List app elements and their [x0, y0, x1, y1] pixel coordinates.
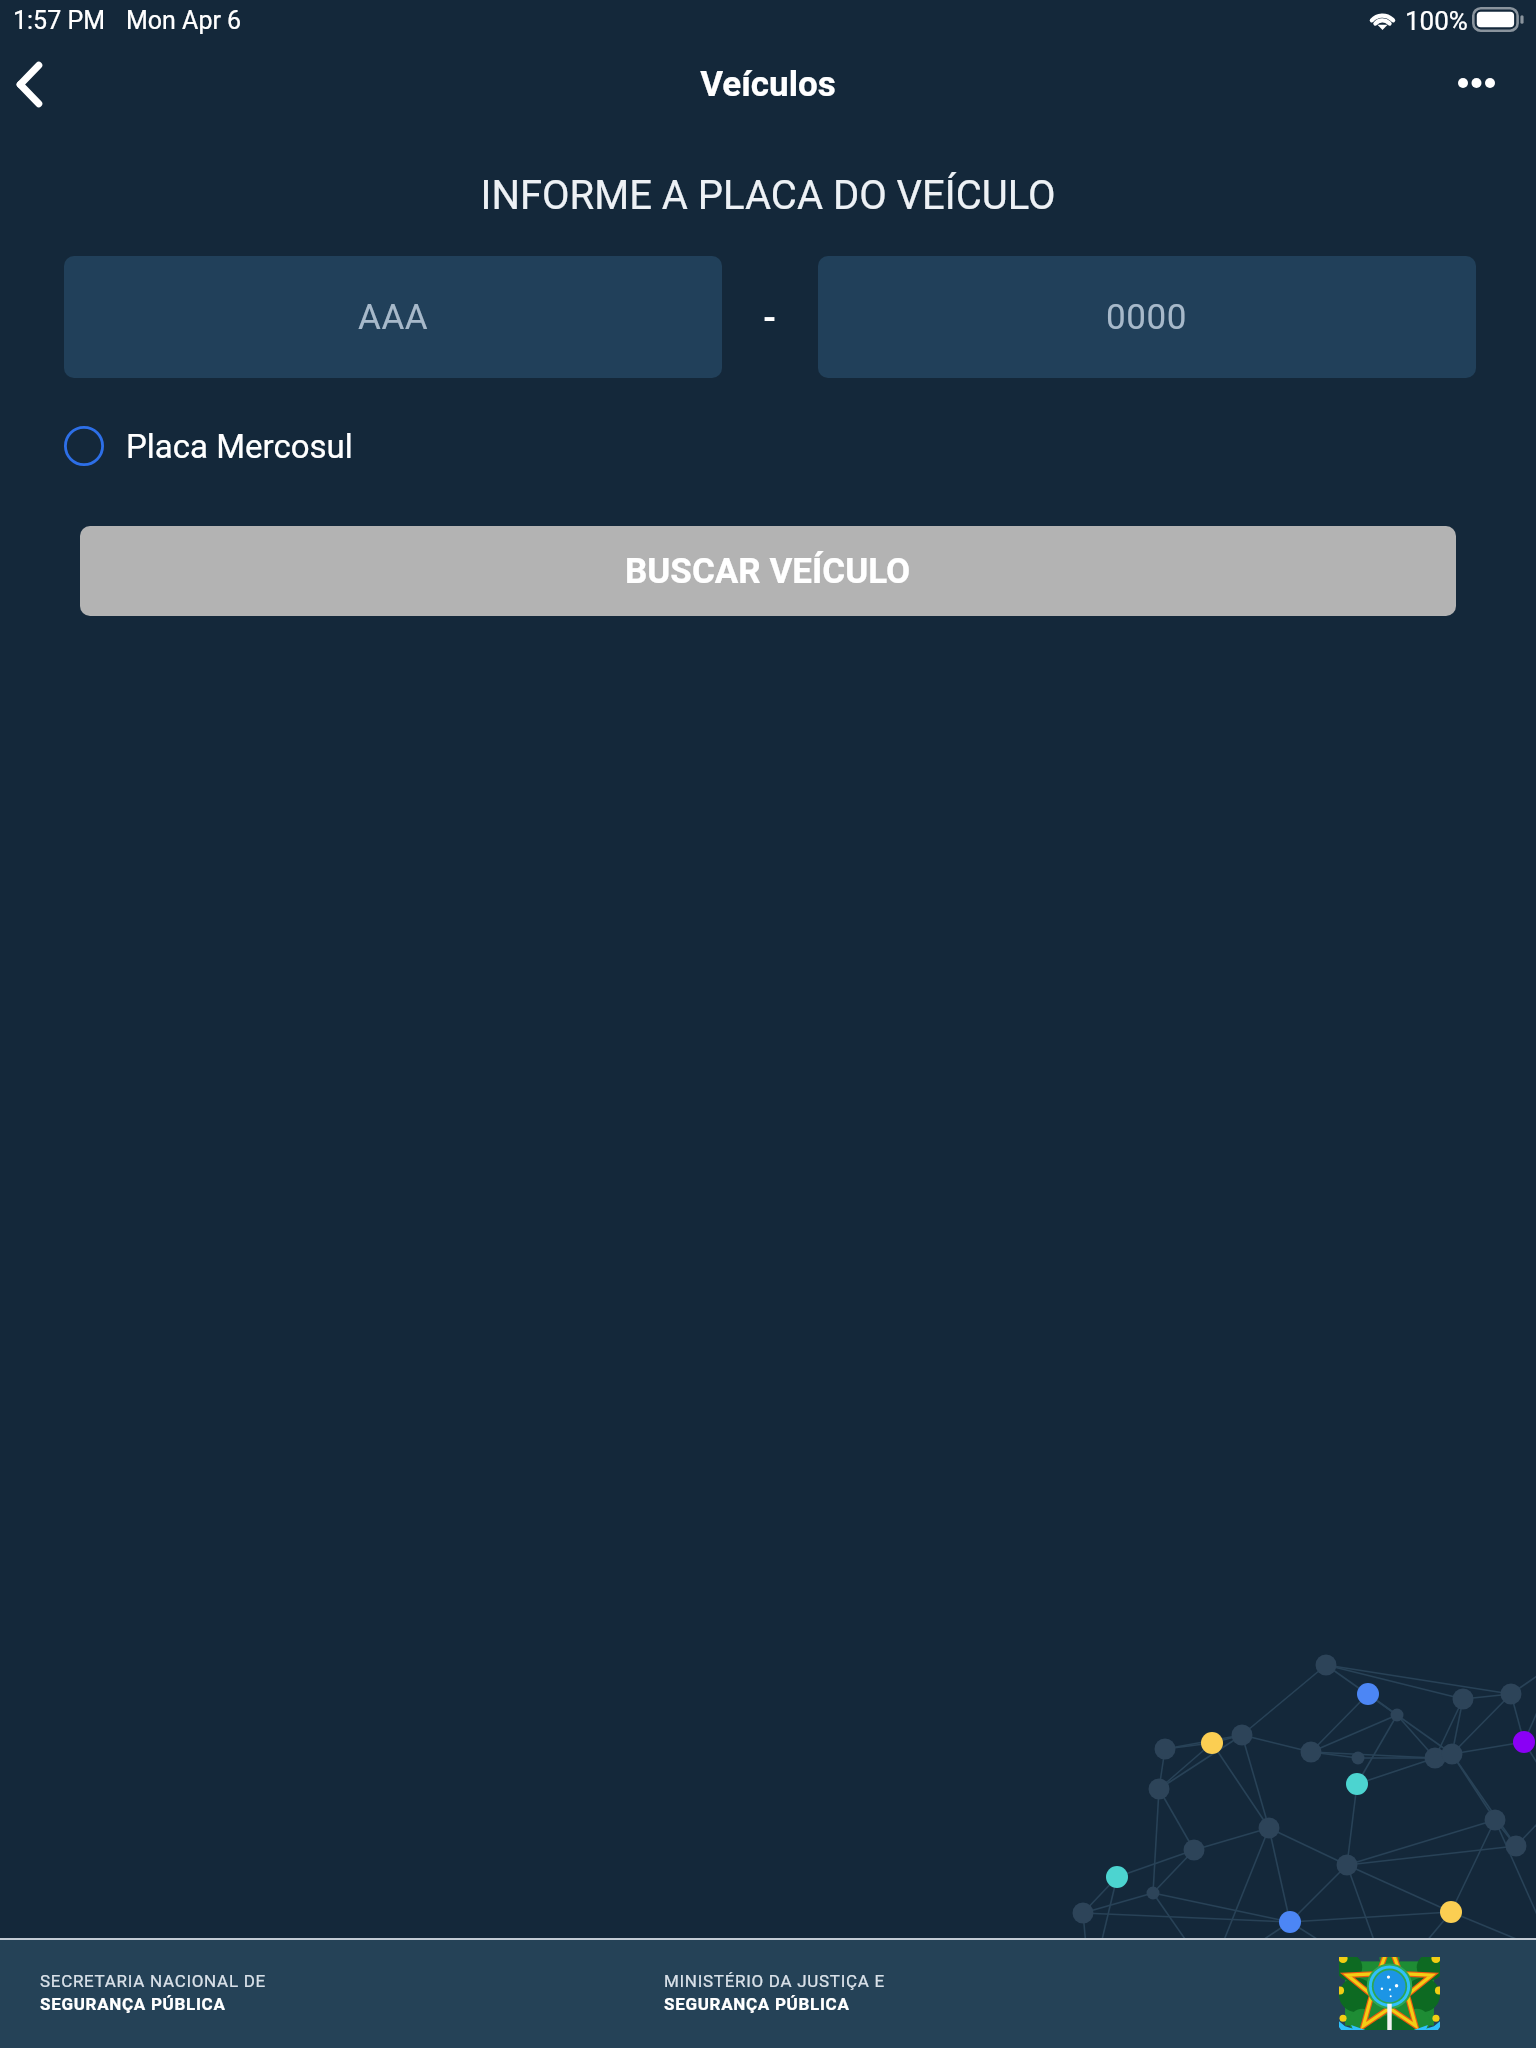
- button[interactable]: BUSCAR VEÍCULO: [80, 526, 1456, 616]
- staticText: MINISTÉRIO DA JUSTIÇA E: [664, 1971, 885, 1991]
- button[interactable]: 0000: [818, 256, 1476, 378]
- staticText: SECRETARIA NACIONAL DE: [40, 1971, 266, 1991]
- staticText: Mon Apr 6: [126, 6, 242, 35]
- button[interactable]: More options: [1442, 51, 1511, 114]
- staticText: 0000: [1106, 297, 1188, 338]
- staticText: BUSCAR VEÍCULO: [625, 551, 911, 592]
- staticText: INFORME A PLACA DO VEÍCULO: [0, 172, 1536, 219]
- staticText: -: [763, 297, 777, 337]
- staticText: SEGURANÇA PÚBLICA: [664, 1994, 850, 2014]
- button[interactable]: AAA: [64, 256, 722, 378]
- staticText: 100%: [1405, 6, 1468, 36]
- staticText: AAA: [358, 297, 429, 338]
- button[interactable]: Placa Mercosul: [64, 426, 353, 466]
- button[interactable]: Back: [0, 52, 58, 116]
- staticText: Veículos: [0, 64, 1536, 105]
- staticText: Placa Mercosul: [126, 427, 353, 466]
- staticText: 1:57 PM: [13, 6, 106, 35]
- staticText: SEGURANÇA PÚBLICA: [40, 1994, 226, 2014]
